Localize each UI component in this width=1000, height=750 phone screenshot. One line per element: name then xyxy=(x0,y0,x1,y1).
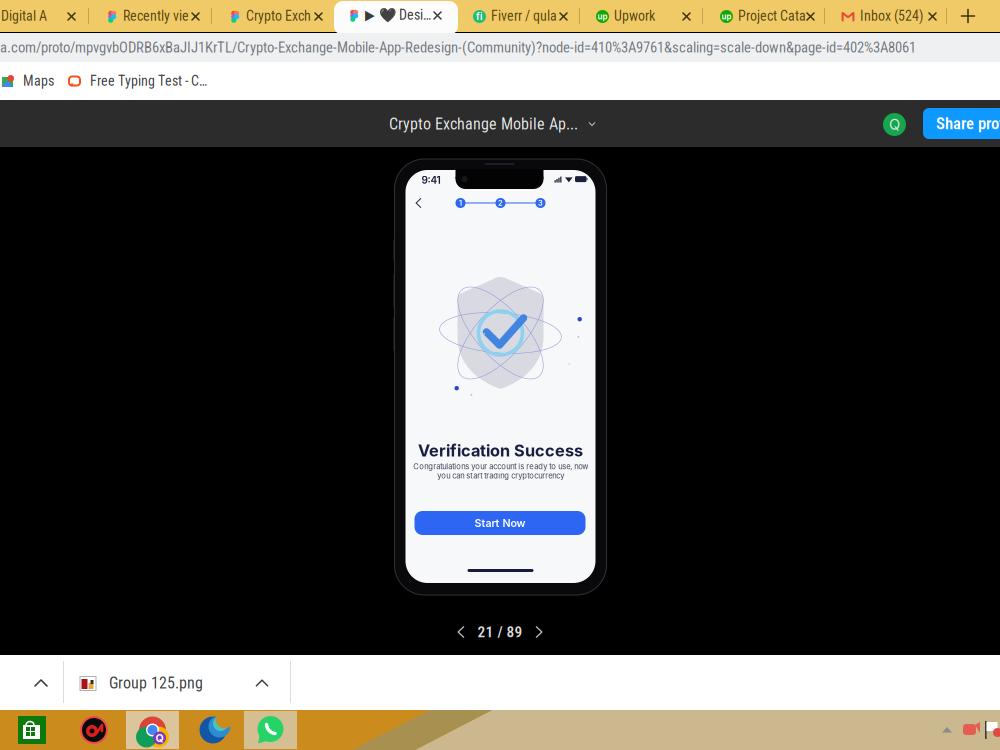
button[interactable]: Close tab xyxy=(678,8,695,25)
button[interactable]: Notifications xyxy=(984,720,1000,740)
staticText: Crypto Exchange Mobile Ap... xyxy=(389,115,578,133)
button[interactable]: Show hidden icons xyxy=(938,721,956,739)
staticText: Upwork xyxy=(614,8,655,24)
button[interactable]: New tab xyxy=(954,2,982,30)
staticText: Share prototype xyxy=(936,114,1000,133)
staticText: a.com/proto/mpvgvbODRB6xBaJIJ1KrTL/Crypt… xyxy=(0,39,916,56)
button[interactable]: WhatsApp xyxy=(244,711,297,749)
staticText: up xyxy=(597,12,607,21)
staticText: Group 125.png xyxy=(109,674,203,692)
button[interactable]: Close tab xyxy=(63,8,80,25)
button[interactable]: Crypto Exchange Mobile Ap... xyxy=(389,110,596,138)
button[interactable]: Close tab xyxy=(555,8,572,25)
button[interactable]: Share prototype xyxy=(923,108,1000,139)
staticText: 21 / 89 xyxy=(477,623,522,641)
staticText: Nft Digital A xyxy=(0,8,47,24)
button[interactable]: Game launcher xyxy=(71,710,117,750)
staticText: Q xyxy=(155,731,163,744)
staticText: Project Cata xyxy=(738,8,806,24)
button[interactable]: Recently vie xyxy=(92,0,212,32)
button[interactable]: Free Typing Test - C... xyxy=(66,69,211,93)
button[interactable]: Close tab xyxy=(429,7,446,24)
button[interactable]: Close tab xyxy=(924,8,941,25)
staticText: Q xyxy=(889,116,900,133)
staticText: fi xyxy=(476,11,483,22)
staticText: up xyxy=(721,12,731,21)
button[interactable]: Google Chrome xyxy=(126,711,179,749)
button[interactable]: Back xyxy=(409,194,427,212)
staticText: 1 xyxy=(459,199,462,207)
button[interactable]: Next frame xyxy=(528,621,550,643)
button[interactable]: fi xyxy=(460,0,580,32)
button[interactable]: Maps xyxy=(0,69,58,93)
staticText: Start Now xyxy=(474,516,525,529)
button[interactable]: up xyxy=(583,0,703,32)
staticText: Verification Success xyxy=(418,441,583,460)
button[interactable]: Nft Digital A xyxy=(0,0,88,32)
button[interactable]: Close tab xyxy=(802,8,819,25)
staticText: Crypto Exch xyxy=(246,8,311,24)
staticText: 3 xyxy=(538,199,543,207)
staticText: Recently vie xyxy=(123,8,189,24)
button[interactable]: Close tab xyxy=(310,8,327,25)
button[interactable]: Start Now xyxy=(414,511,585,535)
staticText: Congratulations your account is ready to… xyxy=(413,462,588,480)
button[interactable]: Microsoft Store xyxy=(9,710,55,750)
staticText: ▶ 🖤 Design xyxy=(365,7,433,23)
button[interactable]: Expand downloads xyxy=(27,669,55,697)
button[interactable]: up xyxy=(707,0,827,32)
staticText: 2 xyxy=(498,199,503,207)
staticText: Inbox (524) xyxy=(860,8,923,24)
staticText: 9:41 xyxy=(421,174,440,186)
button[interactable]: Account xyxy=(883,113,906,136)
button[interactable]: Crypto Exch xyxy=(215,0,335,32)
button[interactable]: Microsoft Edge xyxy=(190,710,236,750)
staticText: Maps xyxy=(23,73,54,89)
button[interactable]: ▶ 🖤 Design xyxy=(334,0,458,32)
button[interactable]: Inbox (524) xyxy=(829,0,949,32)
staticText: Fiverr / qula xyxy=(491,8,557,24)
button[interactable]: Group 125.png xyxy=(71,662,286,704)
button[interactable]: Previous frame xyxy=(450,621,472,643)
button[interactable]: Close tab xyxy=(187,8,204,25)
staticText: Free Typing Test - C... xyxy=(90,73,210,89)
button[interactable]: Network xyxy=(963,720,983,740)
